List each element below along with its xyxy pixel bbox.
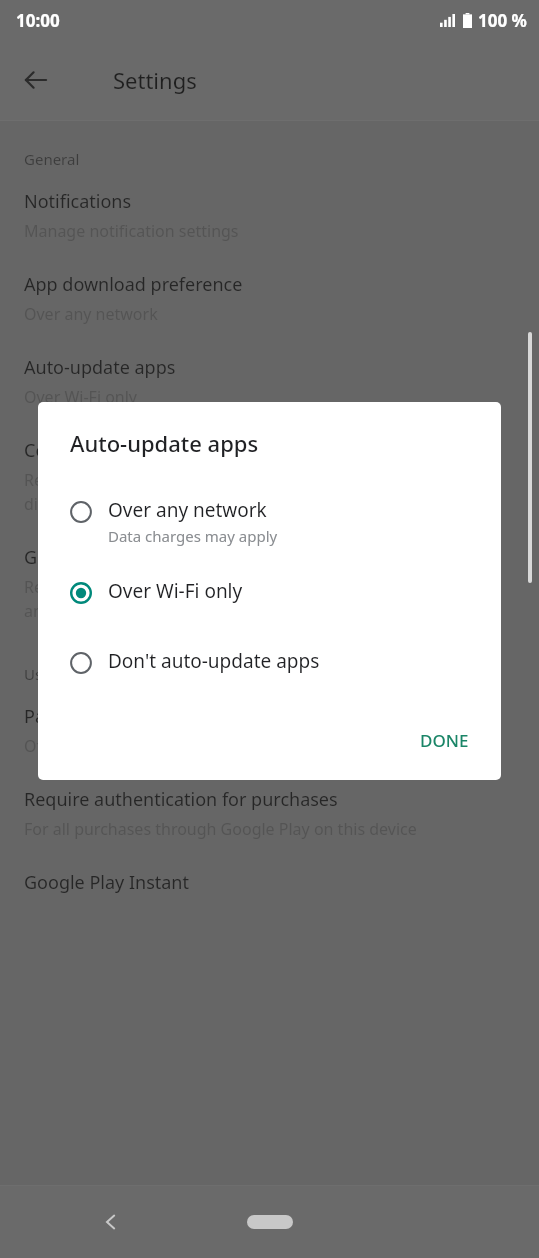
- staticText: directly to your device: [24, 493, 189, 515]
- button[interactable]: Google Play Instant: [0, 854, 539, 909]
- button[interactable]: General preferences: [0, 529, 539, 636]
- staticText: Manage notification settings: [24, 220, 239, 242]
- staticText: Require authentication for purchases: [24, 787, 338, 812]
- staticText: Notifications: [24, 189, 132, 214]
- staticText: Restrict download and update of apps: [24, 469, 310, 491]
- staticText: User controls: [24, 664, 118, 684]
- staticText: Auto-update apps: [70, 428, 259, 458]
- staticText: App download preference: [24, 272, 243, 297]
- staticText: 100 %: [478, 9, 527, 32]
- staticText: Auto-update apps: [24, 355, 176, 380]
- staticText: Parental controls: [24, 704, 168, 729]
- staticText: Over Wi-Fi only: [108, 578, 243, 604]
- staticText: General preferences: [24, 545, 196, 570]
- button[interactable]: Require authentication for purchases: [0, 771, 539, 854]
- button[interactable]: Auto-update apps: [0, 339, 539, 422]
- staticText: and more: [24, 600, 97, 622]
- staticText: Data charges may apply: [108, 526, 278, 546]
- staticText: For all purchases through Google Play on…: [24, 818, 417, 840]
- button[interactable]: Back: [88, 1199, 134, 1245]
- button[interactable]: Home: [247, 1215, 293, 1229]
- staticText: Over any network: [24, 303, 158, 325]
- button[interactable]: Over any network: [38, 488, 501, 555]
- staticText: Off: [24, 735, 48, 757]
- staticText: General: [24, 149, 80, 169]
- button[interactable]: DONE: [404, 717, 485, 764]
- staticText: Google Play Instant: [24, 870, 189, 895]
- staticText: Settings: [113, 65, 197, 95]
- button[interactable]: Don't auto-update apps: [38, 639, 501, 683]
- staticText: 10:00: [16, 9, 60, 32]
- button[interactable]: Notifications: [0, 173, 539, 256]
- staticText: Connection preferences: [24, 438, 226, 463]
- staticText: Over Wi-Fi only: [24, 386, 138, 408]
- button[interactable]: Connection preferences: [0, 422, 539, 529]
- button[interactable]: App download preference: [0, 256, 539, 339]
- staticText: Don't auto-update apps: [108, 648, 320, 674]
- button[interactable]: Parental controls: [0, 688, 539, 771]
- staticText: Over any network: [108, 497, 267, 523]
- button[interactable]: Back: [12, 56, 60, 104]
- staticText: DONE: [420, 729, 469, 752]
- staticText: Restrict download over mobile networks: [24, 576, 327, 598]
- button[interactable]: Over Wi-Fi only: [38, 569, 501, 613]
